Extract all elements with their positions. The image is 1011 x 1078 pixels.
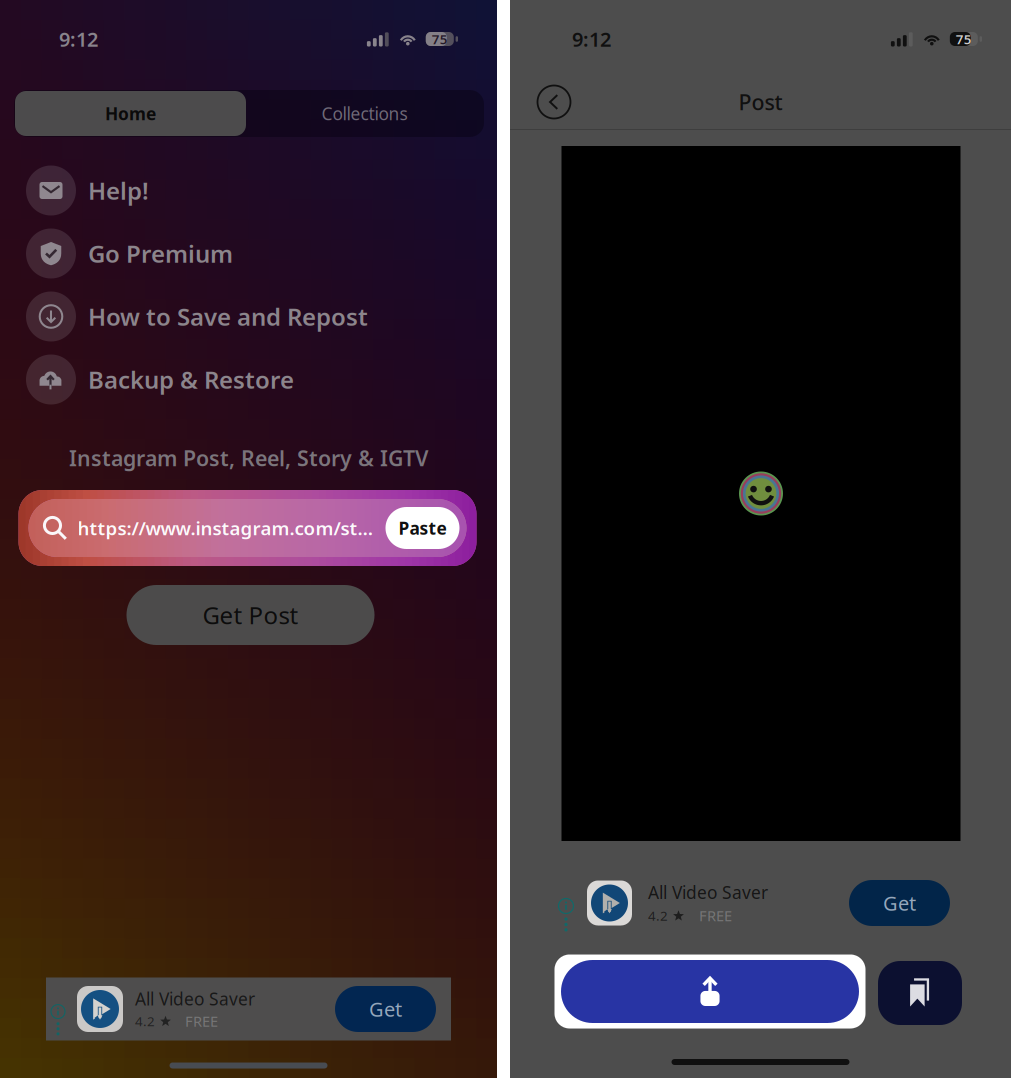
- staticText: Go Premium: [88, 238, 233, 269]
- button[interactable]: Back: [528, 76, 580, 128]
- staticText: 75: [956, 30, 972, 48]
- button[interactable]: How to Save and Repost: [0, 285, 497, 348]
- button[interactable]: Save: [878, 961, 962, 1025]
- staticText: All Video Saver: [135, 987, 255, 1010]
- staticText: 4.2: [648, 907, 668, 924]
- button[interactable]: Go Premium: [0, 222, 497, 285]
- staticText: 4.2: [135, 1012, 155, 1030]
- staticText: Post: [738, 88, 782, 116]
- button[interactable]: Paste: [385, 507, 459, 549]
- staticText: Collections: [321, 102, 407, 125]
- button[interactable]: Get: [849, 880, 950, 926]
- button[interactable]: Backup & Restore: [0, 348, 497, 411]
- staticText: Get: [369, 996, 402, 1022]
- staticText: 75: [432, 30, 448, 48]
- staticText: Get: [883, 890, 916, 916]
- staticText: Instagram Post, Reel, Story & IGTV: [69, 444, 428, 472]
- staticText: FREE: [699, 906, 732, 925]
- button[interactable]: Home: [15, 91, 246, 136]
- staticText: All Video Saver: [648, 881, 768, 904]
- button[interactable]: Share: [554, 954, 865, 1028]
- button[interactable]: Get Post: [126, 585, 374, 645]
- staticText: Paste: [398, 516, 446, 539]
- staticText: 9:12: [572, 26, 611, 52]
- staticText: Backup & Restore: [88, 364, 294, 395]
- staticText: Get Post: [202, 599, 298, 631]
- staticText: https://www.instagram.com/st…: [77, 516, 373, 540]
- staticText: FREE: [185, 1011, 218, 1031]
- staticText: How to Save and Repost: [88, 301, 368, 332]
- button[interactable]: Collections: [246, 91, 483, 136]
- staticText: 9:12: [59, 26, 98, 52]
- button[interactable]: Get: [335, 986, 436, 1032]
- staticText: Home: [105, 102, 156, 125]
- button[interactable]: Help!: [0, 159, 497, 222]
- staticText: Help!: [88, 175, 149, 206]
